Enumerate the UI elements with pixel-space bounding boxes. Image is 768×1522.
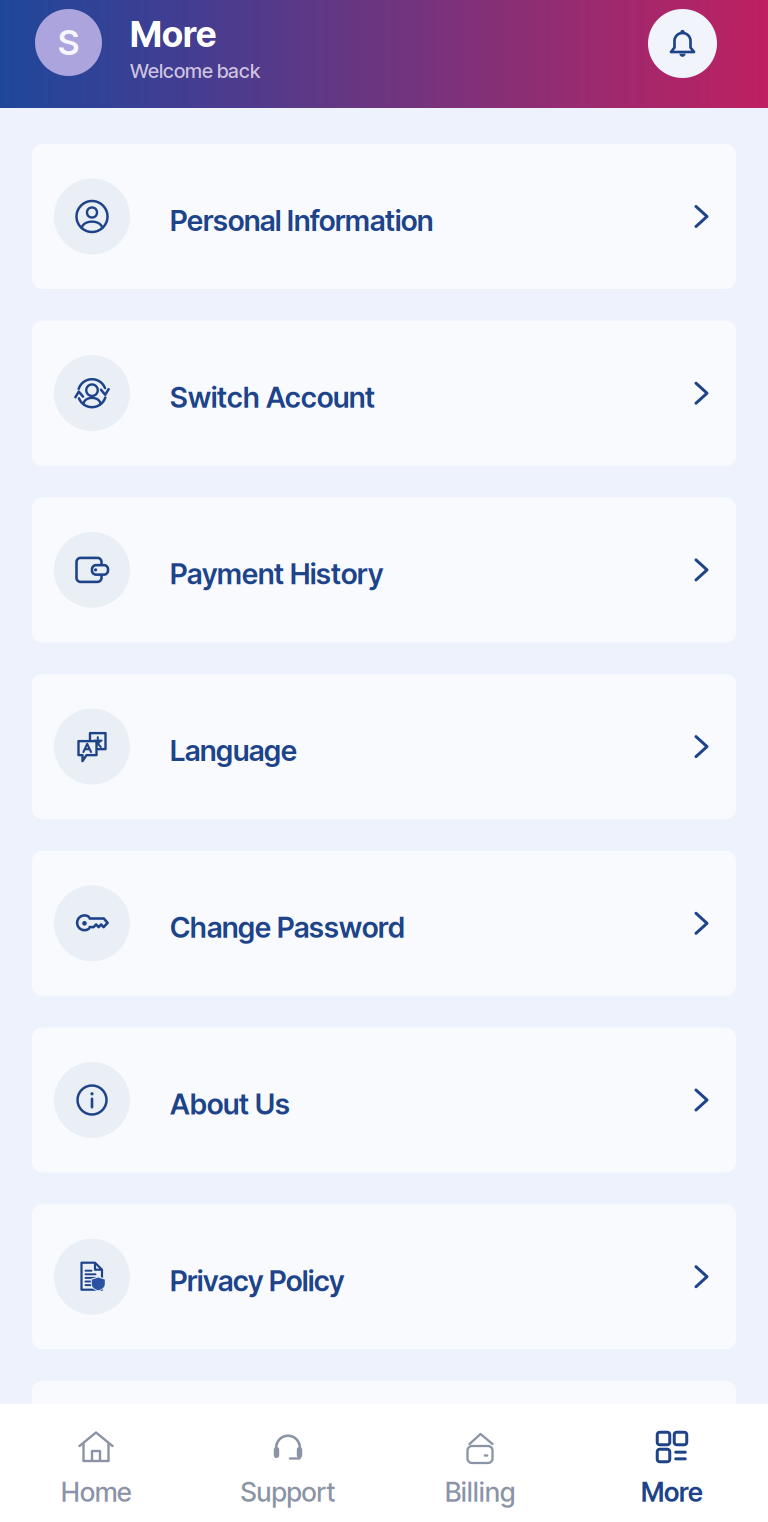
staticText: Billing: [445, 1476, 515, 1508]
button[interactable]: Home: [0, 1404, 192, 1522]
staticText: S: [58, 21, 79, 63]
button[interactable]: Profile: [35, 9, 102, 76]
button[interactable]: Payment History: [32, 497, 736, 642]
button[interactable]: Language: [32, 674, 736, 819]
button[interactable]: Billing: [384, 1404, 576, 1522]
button[interactable]: Notifications: [648, 9, 717, 78]
staticText: Welcome back: [130, 59, 260, 83]
staticText: Support: [240, 1476, 335, 1508]
button[interactable]: Support: [192, 1404, 384, 1522]
staticText: Terms & Conditions: [170, 1440, 420, 1475]
staticText: Privacy Policy: [170, 1263, 344, 1298]
staticText: Change Password: [170, 910, 405, 945]
button[interactable]: Terms & Conditions: [32, 1381, 736, 1522]
staticText: Home: [61, 1476, 131, 1508]
staticText: Switch Account: [170, 380, 375, 415]
button[interactable]: Privacy Policy: [32, 1204, 736, 1349]
button[interactable]: More: [576, 1404, 768, 1522]
staticText: More: [641, 1476, 703, 1508]
button[interactable]: Personal Information: [32, 144, 736, 289]
button[interactable]: Switch Account: [32, 321, 736, 466]
staticText: About Us: [170, 1087, 290, 1121]
staticText: Language: [170, 733, 297, 768]
button[interactable]: About Us: [32, 1027, 736, 1172]
staticText: Payment History: [170, 557, 383, 591]
staticText: More: [130, 12, 216, 56]
button[interactable]: Change Password: [32, 851, 736, 996]
staticText: Personal Information: [170, 203, 433, 238]
